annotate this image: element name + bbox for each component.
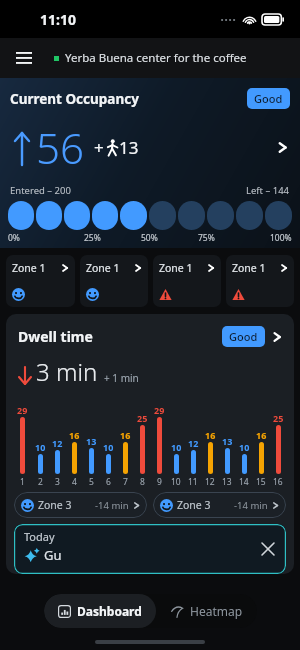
staticText: 14 [239,476,249,488]
staticText: 75% [198,232,215,244]
staticText: 3 [55,476,60,488]
button[interactable]: Good [222,326,265,347]
button[interactable]: Zone 1 [226,255,294,307]
staticText: 6 [106,476,111,488]
button[interactable]: Good [247,88,290,109]
staticText: Current Occupancy [10,90,139,108]
button[interactable]: Close [258,539,278,559]
button[interactable]: Zone 1 [6,255,75,307]
staticText: 25 [137,412,148,424]
button[interactable]: Current Occupancy [0,78,300,248]
button[interactable]: Zone 3 [14,492,147,518]
button[interactable]: Dwell time [6,314,294,574]
staticText: 11:10 [40,10,76,29]
staticText: Today [24,529,55,544]
button[interactable]: Dashboard [44,594,156,628]
staticText: Zone 1 [159,261,193,275]
button[interactable]: Zone 3 [153,492,286,518]
staticText: Dashboard [77,603,142,619]
staticText: Good [254,91,283,106]
staticText: 16 [256,429,267,441]
staticText: Zone 1 [86,261,120,275]
staticText: 100% [270,232,292,244]
staticText: 25 [273,412,284,424]
staticText: 56 [36,119,84,176]
staticText: 10 [239,441,250,453]
button[interactable]: Heatmap [156,594,257,628]
staticText: Dwell time [18,327,93,346]
staticText: 10 [171,441,182,453]
staticText: Gu [44,546,62,564]
staticText: 1 [20,476,25,488]
staticText: Good [229,329,258,344]
button[interactable]: Zone 1 [153,255,221,307]
staticText: 25% [84,232,101,244]
staticText: 2 [38,476,43,488]
staticText: 15 [256,476,266,488]
button[interactable]: Menu [8,42,40,74]
staticText: 3 min [36,355,98,388]
staticText: 5 [89,476,94,488]
staticText: Yerba Buena center for the coffee [65,50,247,66]
staticText: Heatmap [190,603,243,619]
staticText: Zone 1 [232,261,266,275]
staticText: 50% [141,232,158,244]
staticText: -14 min [234,499,268,512]
staticText: 12 [188,437,199,449]
staticText: 11 [188,476,198,488]
staticText: 13 [222,435,233,447]
staticText: 4 [72,476,77,488]
staticText: 8 [140,476,145,488]
staticText: 16 [205,429,216,441]
staticText: Zone 1 [12,261,46,275]
staticText: 16 [273,476,283,488]
staticText: 29 [17,404,28,416]
staticText: + [94,136,104,159]
button[interactable]: Yerba Buena center for the coffee [54,50,247,66]
staticText: Zone 3 [38,498,72,512]
staticText: + 1 min [104,371,139,385]
staticText: 9 [157,476,162,488]
staticText: 13 [119,136,139,159]
staticText: 13 [222,476,232,488]
staticText: 16 [120,429,131,441]
staticText: -14 min [95,499,129,512]
staticText: 10 [35,441,46,453]
staticText: 12 [205,476,215,488]
staticText: 10 [171,476,181,488]
staticText: 12 [52,437,63,449]
staticText: Entered – 200 [10,184,71,197]
staticText: 29 [154,404,165,416]
staticText: Zone 3 [177,498,211,512]
staticText: 13 [86,435,97,447]
staticText: 16 [69,429,80,441]
staticText: 10 [103,441,114,453]
staticText: 0% [8,232,20,244]
button[interactable]: Zone 1 [80,255,148,307]
staticText: 7 [123,476,128,488]
staticText: Left – 144 [246,184,290,197]
